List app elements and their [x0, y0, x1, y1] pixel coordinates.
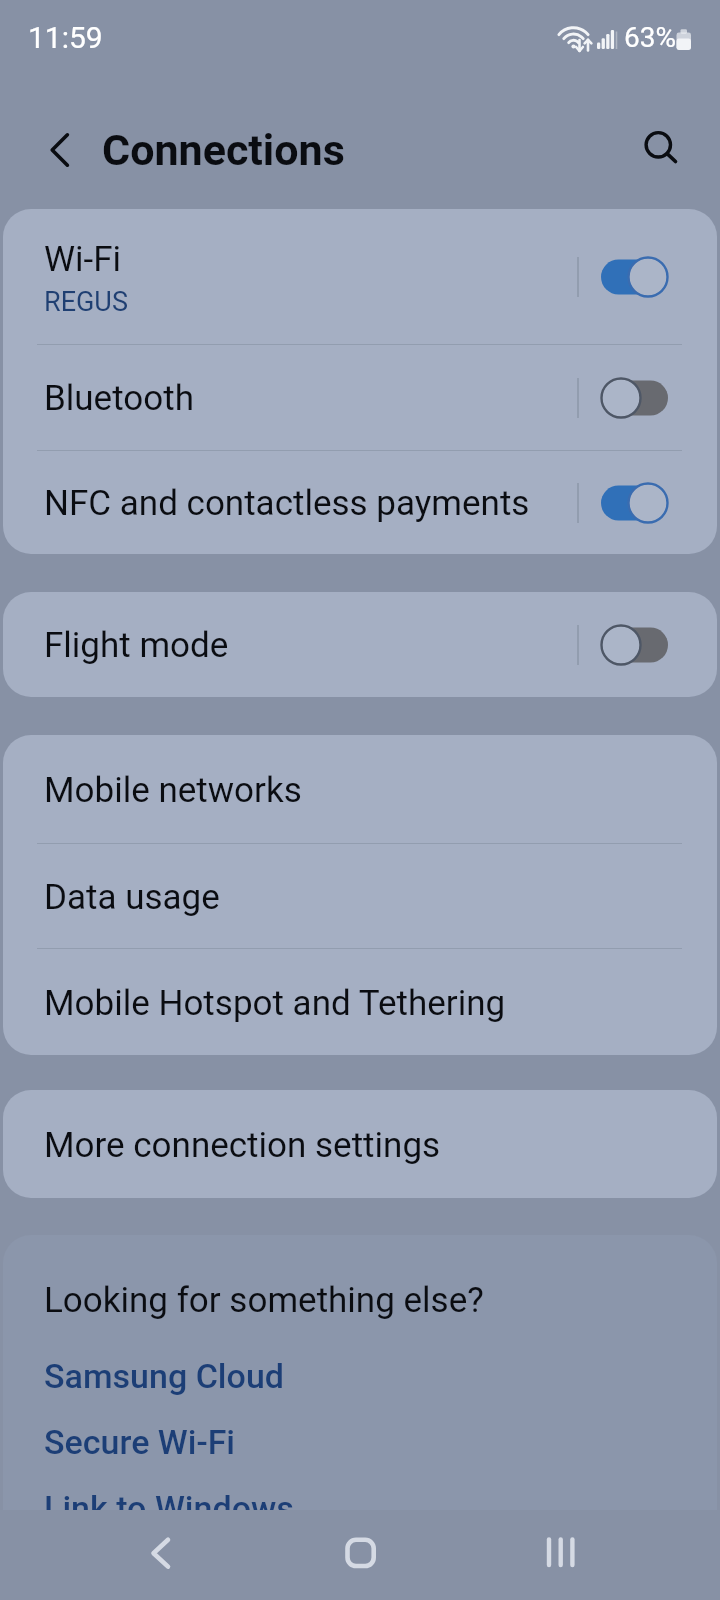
staticText: Data usage [44, 877, 220, 918]
staticText: Samsung Cloud [44, 1356, 285, 1396]
staticText: Looking for something else? [44, 1280, 484, 1321]
button[interactable]: Mobile Hotspot and Tethering [3, 949, 717, 1055]
staticText: Flight mode [44, 625, 229, 666]
staticText: NFC and contactless payments [44, 483, 530, 524]
staticText: 11:59 [28, 20, 103, 55]
staticText: Connections [102, 125, 345, 175]
button[interactable]: Wi-Fi [3, 209, 717, 344]
button[interactable] [601, 481, 668, 525]
button[interactable]: Link to Windows [3, 1475, 717, 1541]
staticText: More connection settings [44, 1125, 441, 1166]
staticText: Link to Windows [44, 1488, 294, 1528]
button[interactable] [601, 255, 668, 299]
button[interactable] [601, 376, 668, 420]
staticText: 63% [624, 21, 676, 54]
staticText: Wi-Fi [44, 239, 122, 280]
button[interactable]: Secure Wi-Fi [3, 1409, 717, 1475]
staticText: Mobile Hotspot and Tethering [44, 983, 506, 1024]
button[interactable]: Home [300, 1510, 420, 1600]
button[interactable]: Recent apps [501, 1510, 621, 1600]
staticText: Bluetooth [44, 378, 194, 419]
button[interactable]: Back [100, 1510, 220, 1600]
button[interactable]: NFC and contactless payments [3, 451, 717, 554]
button[interactable]: Mobile networks [3, 735, 717, 843]
staticText: Secure Wi-Fi [44, 1422, 236, 1462]
button[interactable]: Flight mode [3, 592, 717, 697]
button[interactable]: Navigate up [24, 98, 94, 168]
button[interactable]: Data usage [3, 844, 717, 948]
button[interactable] [601, 623, 668, 667]
staticText: REGUS [44, 286, 128, 318]
button[interactable]: Bluetooth [3, 345, 717, 450]
button[interactable]: Search [626, 98, 696, 168]
button[interactable]: Samsung Cloud [3, 1343, 717, 1409]
staticText: Mobile networks [44, 770, 302, 811]
button[interactable]: More connection settings [3, 1090, 717, 1198]
